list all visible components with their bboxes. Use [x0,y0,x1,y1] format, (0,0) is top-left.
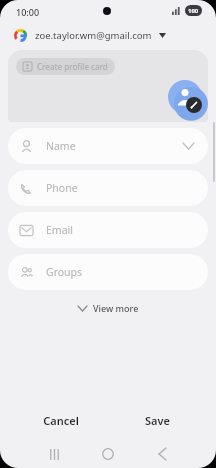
button[interactable]: Groups [8,254,208,290]
button[interactable]: Email [8,212,208,248]
staticText: Create profile card [37,61,108,72]
staticText: Phone [46,181,78,195]
staticText: 100 [188,7,199,15]
button[interactable]: Cancel [18,404,104,436]
staticText: Cancel [43,413,79,428]
button[interactable]: Home [82,440,134,468]
button[interactable]: View more [0,298,216,318]
staticText: View more [93,302,139,314]
button[interactable]: Create profile card [16,58,115,75]
button[interactable]: zoe.taylor.wm@gmail.com [0,24,216,46]
staticText: 10:00 [16,6,40,18]
staticText: Name [46,139,76,153]
button[interactable]: Back [136,440,188,468]
button[interactable]: Phone [8,170,208,206]
button[interactable]: Name [8,128,208,164]
button[interactable]: Recents [28,440,80,468]
staticText: Save [145,413,170,428]
staticText: Email [46,223,73,237]
staticText: Groups [46,265,83,279]
button[interactable]: Save [114,404,200,436]
staticText: zoe.taylor.wm@gmail.com [35,29,152,42]
button[interactable]: Edit profile photo [168,80,202,114]
